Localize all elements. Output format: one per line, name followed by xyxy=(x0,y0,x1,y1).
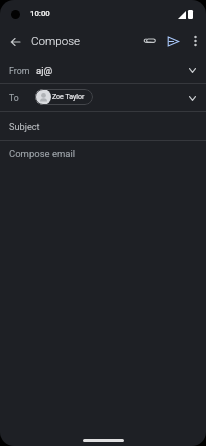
button[interactable] xyxy=(0,56,206,83)
staticText: To xyxy=(9,93,19,103)
staticText: aj@ xyxy=(36,65,53,76)
button[interactable]: Expand xyxy=(185,63,199,77)
staticText: 10:00 xyxy=(30,9,50,18)
staticText: Subject xyxy=(9,121,40,132)
button[interactable]: More options xyxy=(184,30,206,52)
staticText: From xyxy=(9,66,30,76)
button[interactable]: Zoe Taylor xyxy=(35,89,93,105)
button[interactable] xyxy=(0,141,206,171)
button[interactable] xyxy=(0,84,206,111)
staticText: Compose xyxy=(31,34,81,48)
staticText: Compose email xyxy=(9,148,76,159)
button[interactable]: Expand xyxy=(185,91,199,105)
button[interactable]: Back xyxy=(2,29,28,55)
button[interactable] xyxy=(0,112,206,140)
button[interactable]: Send xyxy=(161,29,185,53)
button[interactable]: Attach file xyxy=(138,29,162,53)
staticText: Zoe Taylor xyxy=(52,93,85,101)
